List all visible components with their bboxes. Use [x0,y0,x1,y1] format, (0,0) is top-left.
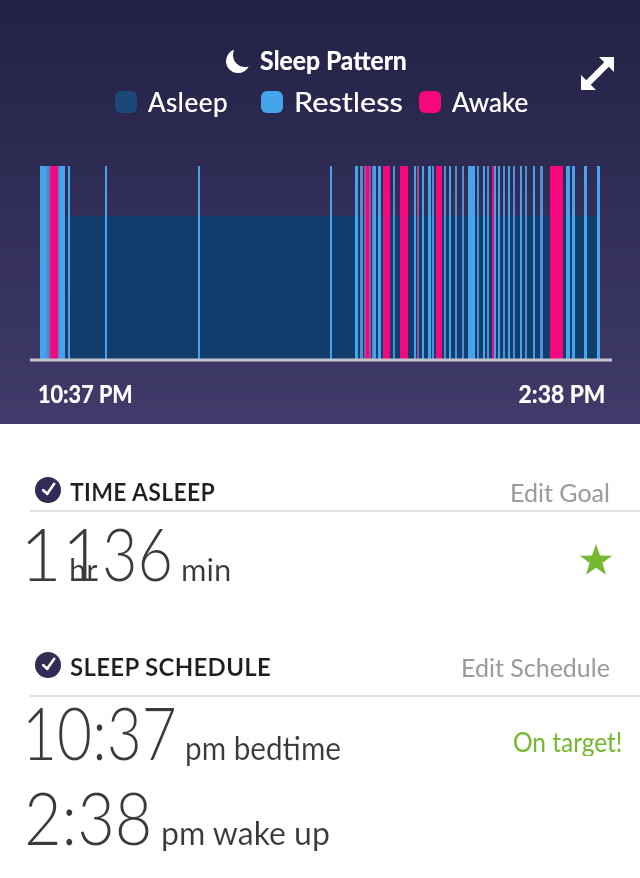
button[interactable]: Edit Goal [510,477,610,503]
staticText: SLEEP SCHEDULE [70,652,272,678]
staticText: min [181,550,232,587]
staticText: Awake [452,86,529,117]
staticText: TIME ASLEEP [70,477,216,503]
staticText: 2:38 [24,774,153,860]
staticText: pm bedtime [185,727,342,767]
staticText: 2:38 PM [519,379,606,408]
staticText: 36 [102,510,173,596]
staticText: 10:37 PM [38,379,133,408]
staticText: hr [69,550,98,587]
staticText: On target! [513,726,623,756]
staticText: Restless [294,86,404,117]
button[interactable] [580,56,616,92]
staticText: 10:37 [22,689,177,775]
staticText: Sleep Pattern [260,44,407,75]
staticText: Edit Goal [510,477,610,503]
button[interactable]: Edit Schedule [461,652,610,678]
staticText: pm wake up [161,812,331,852]
staticText: 11 [20,510,104,596]
staticText: Asleep [148,86,229,117]
staticText: Edit Schedule [461,652,610,678]
